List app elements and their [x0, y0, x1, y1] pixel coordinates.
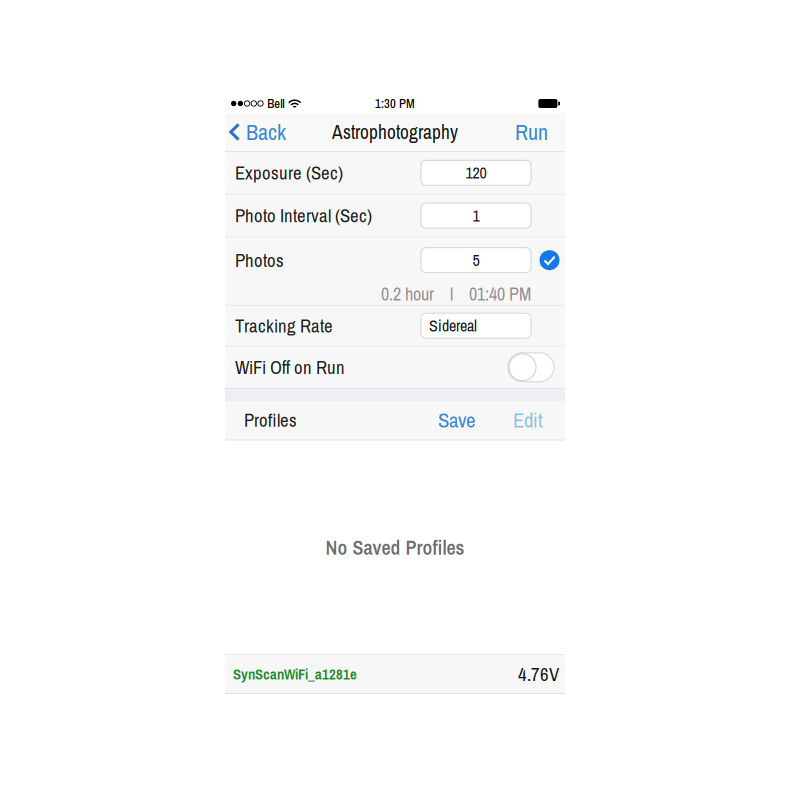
staticText: Exposure (Sec) [235, 160, 343, 185]
staticText: 4.76V [518, 662, 559, 687]
staticText: Tracking Rate [235, 313, 333, 338]
staticText: Astrophotography [332, 119, 458, 145]
staticText: 1 [472, 205, 479, 226]
staticText: No Saved Profiles [325, 534, 464, 561]
button[interactable]: WiFi Off on Run [508, 353, 554, 382]
staticText: Profiles [244, 407, 297, 433]
staticText: Sidereal [429, 315, 477, 336]
button[interactable]: Save [426, 401, 494, 440]
staticText: 5 [472, 249, 479, 271]
staticText: Edit [513, 406, 543, 434]
button[interactable]: Edit [494, 401, 553, 440]
staticText: Back [246, 117, 286, 147]
staticText: Run [515, 117, 548, 147]
staticText: SynScanWiFi_a1281e [233, 664, 357, 684]
button[interactable]: Photos [421, 248, 531, 273]
staticText: 0.2 hour l 01:40 PM [381, 282, 531, 306]
staticText: Bell [267, 95, 284, 112]
staticText: 1:30 PM [375, 95, 415, 112]
button[interactable]: Tracking Rate [421, 313, 531, 338]
button[interactable]: Back [225, 113, 296, 151]
staticText: Photo Interval (Sec) [235, 203, 372, 228]
staticText: WiFi Off on Run [235, 355, 345, 380]
staticText: Save [438, 406, 475, 434]
button[interactable]: Run [503, 113, 565, 151]
staticText: 120 [465, 162, 486, 184]
button[interactable]: Apply [531, 250, 559, 270]
button[interactable]: Photo Interval (Sec) [421, 203, 531, 228]
button[interactable]: Exposure (Sec) [421, 160, 531, 185]
staticText: Photos [235, 248, 284, 273]
